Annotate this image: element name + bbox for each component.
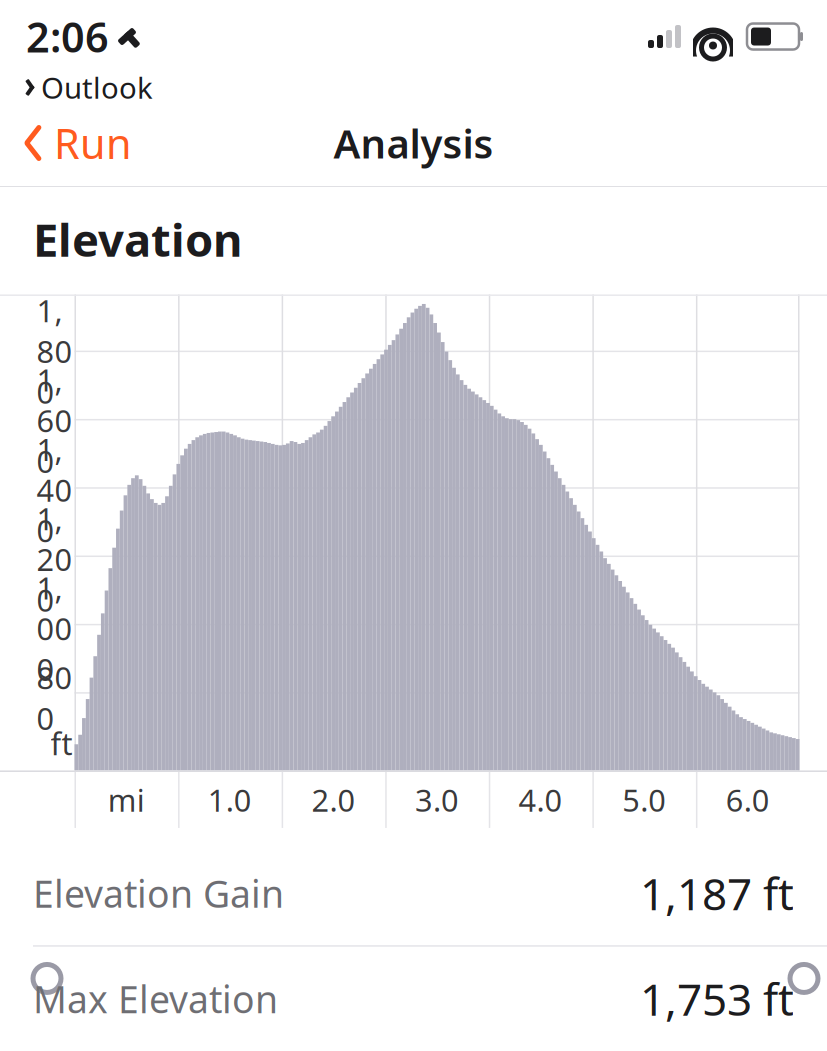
button[interactable]: Max Elevation bbox=[0, 947, 827, 1051]
staticText: ft bbox=[50, 723, 72, 764]
staticText: Max Elevation bbox=[33, 974, 278, 1023]
staticText: 1,187 ft bbox=[640, 864, 794, 922]
staticText: 1,000 bbox=[36, 567, 72, 689]
staticText: 1,600 bbox=[36, 359, 72, 481]
staticText: 2.0 bbox=[311, 780, 355, 820]
staticText: 4.0 bbox=[519, 780, 563, 820]
staticText: mi bbox=[108, 780, 145, 820]
staticText: 5.0 bbox=[622, 780, 666, 820]
staticText: 6.0 bbox=[726, 780, 770, 820]
staticText: 1,753 ft bbox=[640, 969, 794, 1028]
staticText: 2:06 bbox=[26, 9, 109, 64]
staticText: 3.0 bbox=[415, 780, 459, 820]
button[interactable]: Run bbox=[0, 104, 154, 182]
staticText: Elevation bbox=[33, 209, 242, 269]
staticText: 1,200 bbox=[36, 498, 72, 620]
staticText: 1,400 bbox=[36, 429, 72, 551]
staticText: Outlook bbox=[41, 68, 153, 107]
staticText: Run bbox=[54, 116, 132, 170]
staticText: 1.0 bbox=[208, 780, 252, 820]
staticText: 1,800 bbox=[36, 290, 72, 412]
staticText: 800 bbox=[36, 657, 72, 738]
staticText: Analysis bbox=[333, 116, 493, 169]
staticText: Elevation Gain bbox=[33, 868, 284, 918]
button[interactable]: Elevation Gain bbox=[0, 841, 827, 945]
